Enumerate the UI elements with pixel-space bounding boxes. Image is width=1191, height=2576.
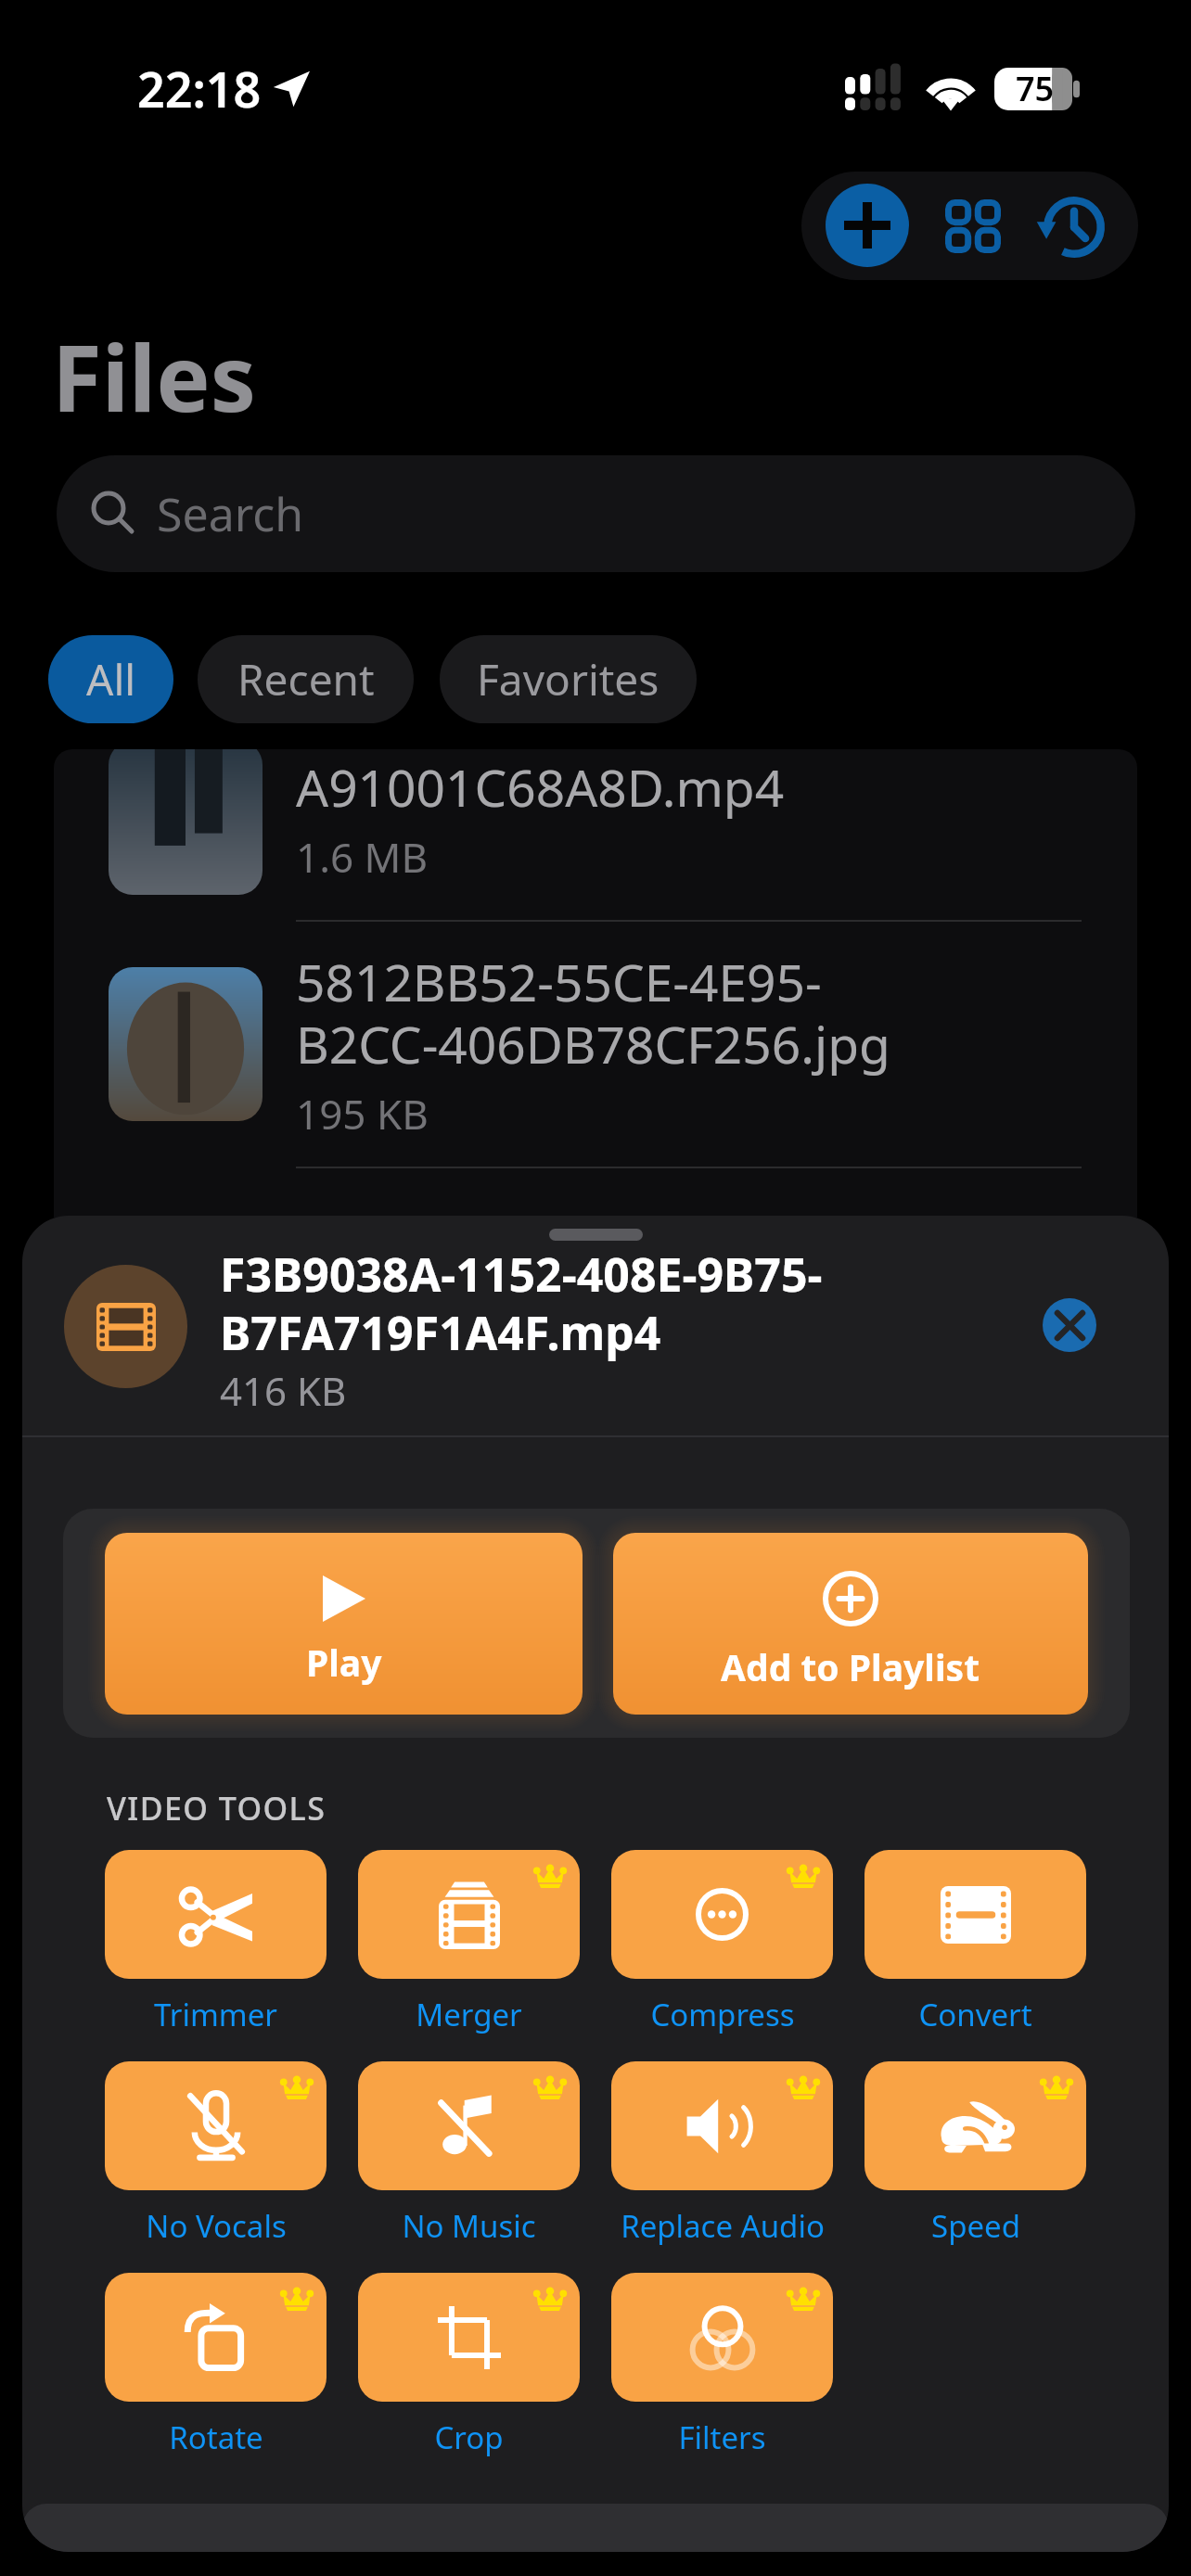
button[interactable]: Compress [611,1850,833,2035]
button[interactable]: Replace Audio [611,2061,833,2247]
button[interactable]: Merger [358,1850,580,2035]
staticText: 75 [1016,66,1055,111]
staticText: Merger [416,1994,522,2035]
button[interactable]: Convert [864,1850,1086,2035]
button[interactable]: 5812BB52-55CE-4E95- B2CC-406DB78CF256.jp… [54,922,1137,1168]
staticText: All [86,650,136,708]
button[interactable]: History [1035,190,1109,264]
button[interactable]: Rotate [105,2273,327,2458]
button[interactable]: All [48,635,173,723]
staticText: Add to Playlist [721,1642,980,1691]
staticText: Play [306,1638,382,1687]
button[interactable]: A91001C68A8D.mp4 [54,749,1137,922]
button[interactable]: Recent [198,635,414,723]
button[interactable]: Trimmer [105,1850,327,2035]
staticText: Rotate [169,2417,263,2458]
button[interactable]: No Music [358,2061,580,2247]
staticText: Compress [650,1994,795,2035]
staticText: 1.6 MB [296,829,429,885]
staticText: Crop [434,2417,504,2458]
staticText: Convert [918,1994,1032,2035]
staticText: F3B9038A-1152-408E-9B75- B7FA719F1A4F.mp… [220,1243,823,1364]
staticText: Filters [678,2417,766,2458]
staticText: A91001C68A8D.mp4 [296,752,785,822]
button[interactable]: Close [1043,1298,1096,1352]
staticText: 416 KB [220,1364,347,1417]
staticText: Favorites [477,650,660,708]
button[interactable]: Crop [358,2273,580,2458]
staticText: Replace Audio [621,2205,825,2247]
button[interactable]: Add [826,184,909,267]
staticText: No Music [402,2205,536,2247]
button[interactable]: Speed [864,2061,1086,2247]
button[interactable]: Play [105,1533,583,1715]
staticText: No Vocals [146,2205,287,2247]
button[interactable]: E6ED8542-37BB-45A0-8ED9- [54,1168,1137,1184]
button[interactable]: Add to Playlist [613,1533,1088,1715]
staticText: Speed [931,2205,1020,2247]
button[interactable]: Grid view [941,194,1005,259]
button[interactable]: No Vocals [105,2061,327,2247]
staticText: Search [157,482,304,545]
button[interactable]: Filters [611,2273,833,2458]
staticText: 195 KB [296,1086,429,1141]
staticText: 22:18 [137,56,262,121]
button[interactable]: Search [57,455,1135,572]
staticText: 5812BB52-55CE-4E95- B2CC-406DB78CF256.jp… [296,947,890,1078]
staticText: Trimmer [154,1994,277,2035]
staticText: Files [52,314,257,438]
staticText: Recent [237,650,375,708]
button[interactable]: Favorites [440,635,697,723]
staticText: VIDEO TOOLS [107,1787,327,1830]
